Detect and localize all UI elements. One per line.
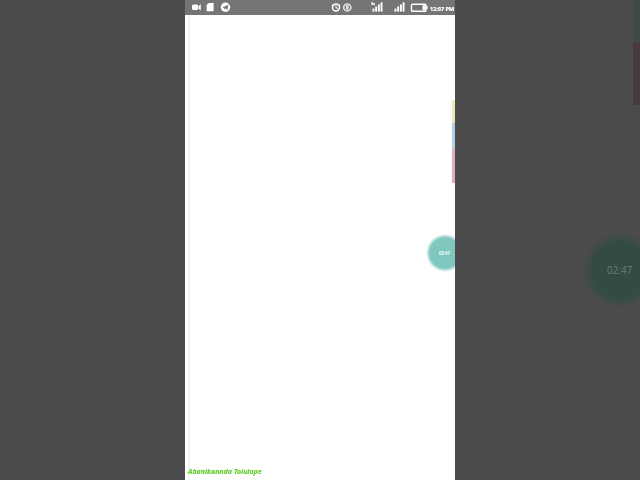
button[interactable]: 12:07 PM <box>185 0 455 15</box>
button[interactable]: 02:47 <box>590 240 640 300</box>
staticText: 02:47 <box>607 263 633 277</box>
staticText: 02:47 <box>439 250 451 256</box>
staticText: 12:07 PM <box>430 5 455 12</box>
staticText: Abanikannda Tolulope <box>188 467 262 477</box>
button[interactable]: 02:47 <box>429 237 455 269</box>
